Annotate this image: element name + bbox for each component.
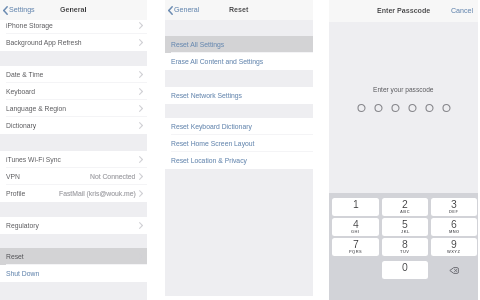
staticText: Erase All Content and Settings: [171, 58, 264, 66]
staticText: 2: [402, 199, 408, 211]
staticText: 1: [353, 199, 359, 211]
staticText: Reset Home Screen Layout: [171, 140, 255, 148]
staticText: Reset All Settings: [171, 41, 225, 49]
staticText: ABC: [400, 209, 411, 213]
staticText: General: [60, 6, 87, 14]
staticText: Not Connected: [90, 173, 136, 181]
staticText: Date & Time: [6, 71, 44, 79]
staticText: Language & Region: [6, 105, 67, 113]
staticText: 6: [451, 219, 457, 231]
button[interactable]: Reset All Settings: [165, 36, 313, 53]
staticText: Reset Network Settings: [171, 92, 243, 100]
staticText: PQRS: [349, 249, 363, 253]
staticText: 0: [402, 262, 408, 274]
button[interactable]: 6: [431, 218, 477, 236]
staticText: GHI: [351, 229, 360, 233]
button[interactable]: Reset: [0, 248, 147, 265]
staticText: iPhone Storage: [6, 22, 53, 30]
staticText: 4: [353, 219, 359, 231]
button[interactable]: VPN: [0, 168, 147, 185]
button[interactable]: 7: [332, 238, 379, 256]
button[interactable]: Keyboard: [0, 83, 147, 100]
staticText: Reset Location & Privacy: [171, 157, 247, 165]
staticText: Cancel: [451, 7, 474, 15]
staticText: Shut Down: [6, 270, 40, 278]
button[interactable]: Language & Region: [0, 100, 147, 117]
staticText: Background App Refresh: [6, 39, 82, 47]
staticText: Reset: [6, 253, 24, 261]
staticText: 5: [402, 219, 408, 231]
staticText: 3: [451, 199, 457, 211]
staticText: Reset Keyboard Dictionary: [171, 123, 252, 131]
staticText: FastMail (kris@wouk.me): [59, 190, 136, 198]
button[interactable]: Dictionary: [0, 117, 147, 134]
button[interactable]: Profile: [0, 185, 147, 202]
staticText: Reset: [229, 6, 249, 14]
staticText: 9: [451, 239, 457, 251]
button[interactable]: Regulatory: [0, 217, 147, 234]
button[interactable]: 0: [382, 261, 428, 279]
button[interactable]: Delete: [431, 261, 477, 279]
button[interactable]: 8: [382, 238, 428, 256]
staticText: General: [174, 6, 200, 14]
staticText: Settings: [9, 6, 35, 14]
staticText: WXYZ: [447, 249, 461, 253]
button[interactable]: iTunes Wi-Fi Sync: [0, 151, 147, 168]
button[interactable]: Reset Location & Privacy: [165, 152, 313, 169]
staticText: Dictionary: [6, 122, 37, 130]
staticText: VPN: [6, 173, 20, 181]
button[interactable]: Reset Home Screen Layout: [165, 135, 313, 152]
button[interactable]: Erase All Content and Settings: [165, 53, 313, 70]
button[interactable]: Cancel: [451, 7, 474, 15]
staticText: JKL: [401, 229, 410, 233]
button[interactable]: Date & Time: [0, 66, 147, 83]
button[interactable]: 4: [332, 218, 379, 236]
button[interactable]: Reset Network Settings: [165, 87, 313, 104]
button[interactable]: iPhone Storage: [0, 20, 147, 34]
staticText: Regulatory: [6, 222, 39, 230]
button[interactable]: 9: [431, 238, 477, 256]
staticText: MNO: [449, 229, 460, 233]
button[interactable]: Settings: [3, 0, 144, 20]
button[interactable]: Background App Refresh: [0, 34, 147, 51]
button[interactable]: Shut Down: [0, 265, 147, 282]
staticText: TUV: [400, 249, 410, 253]
button[interactable]: General: [168, 0, 310, 20]
button[interactable]: 5: [382, 218, 428, 236]
button[interactable]: 1: [332, 198, 379, 216]
staticText: Enter Passcode: [377, 7, 431, 15]
staticText: DEF: [449, 209, 459, 213]
button[interactable]: 2: [382, 198, 428, 216]
staticText: Keyboard: [6, 88, 36, 96]
staticText: Profile: [6, 190, 26, 198]
staticText: 7: [353, 239, 359, 251]
button[interactable]: Reset Keyboard Dictionary: [165, 118, 313, 135]
staticText: iTunes Wi-Fi Sync: [6, 156, 61, 164]
staticText: 8: [402, 239, 408, 251]
button[interactable]: 3: [431, 198, 477, 216]
staticText: Enter your passcode: [373, 86, 434, 93]
